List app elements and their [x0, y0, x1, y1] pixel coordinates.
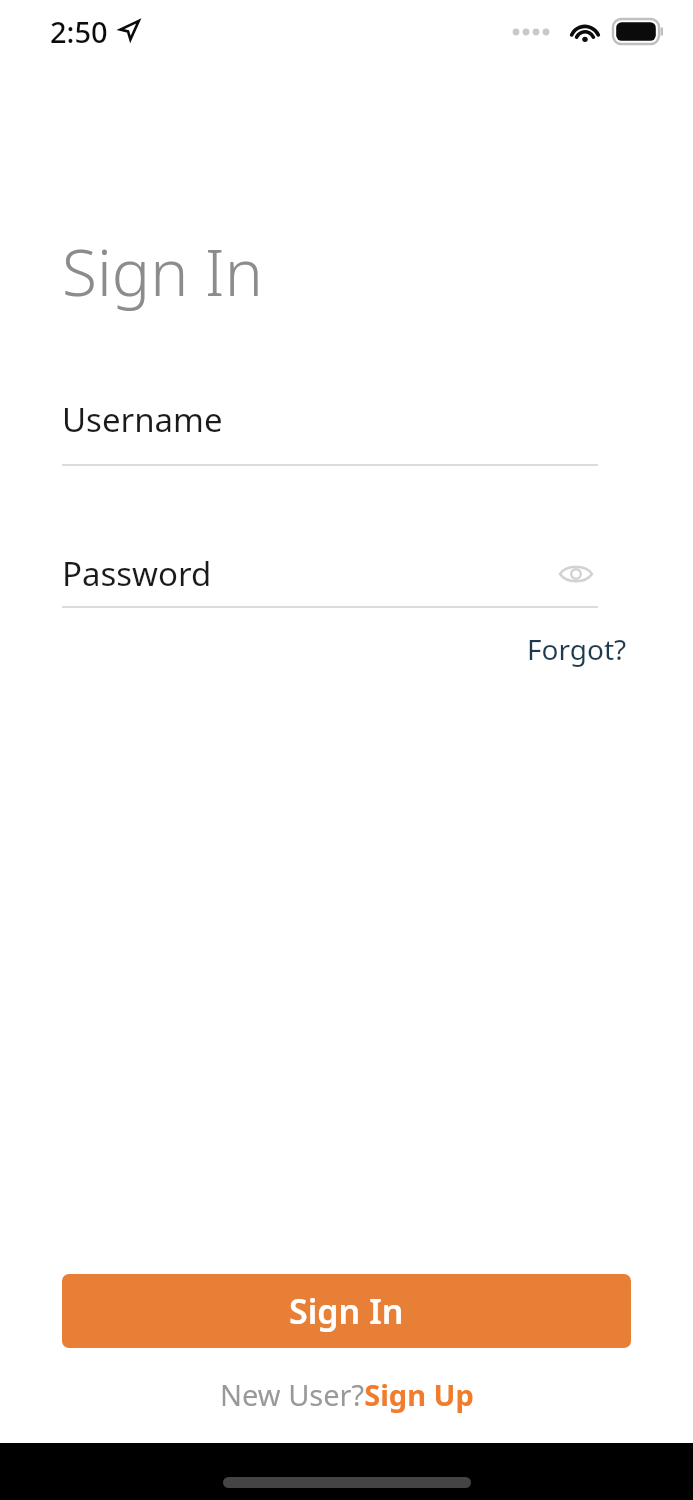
staticText: Forgot? [527, 630, 627, 668]
button[interactable]: New User?Sign Up [220, 1375, 474, 1414]
staticText: Sign In [62, 228, 263, 315]
button[interactable]: Sign In [62, 1274, 631, 1348]
staticText: 2:50 [50, 12, 108, 51]
staticText: Password [62, 551, 212, 596]
button[interactable]: Password [62, 551, 598, 596]
button[interactable]: Show password [554, 552, 598, 596]
button[interactable]: Forgot? [523, 626, 631, 672]
button[interactable]: Username [62, 397, 598, 466]
staticText: New User?Sign Up [220, 1375, 474, 1414]
staticText: Sign In [289, 1288, 404, 1334]
staticText: Username [62, 397, 223, 442]
